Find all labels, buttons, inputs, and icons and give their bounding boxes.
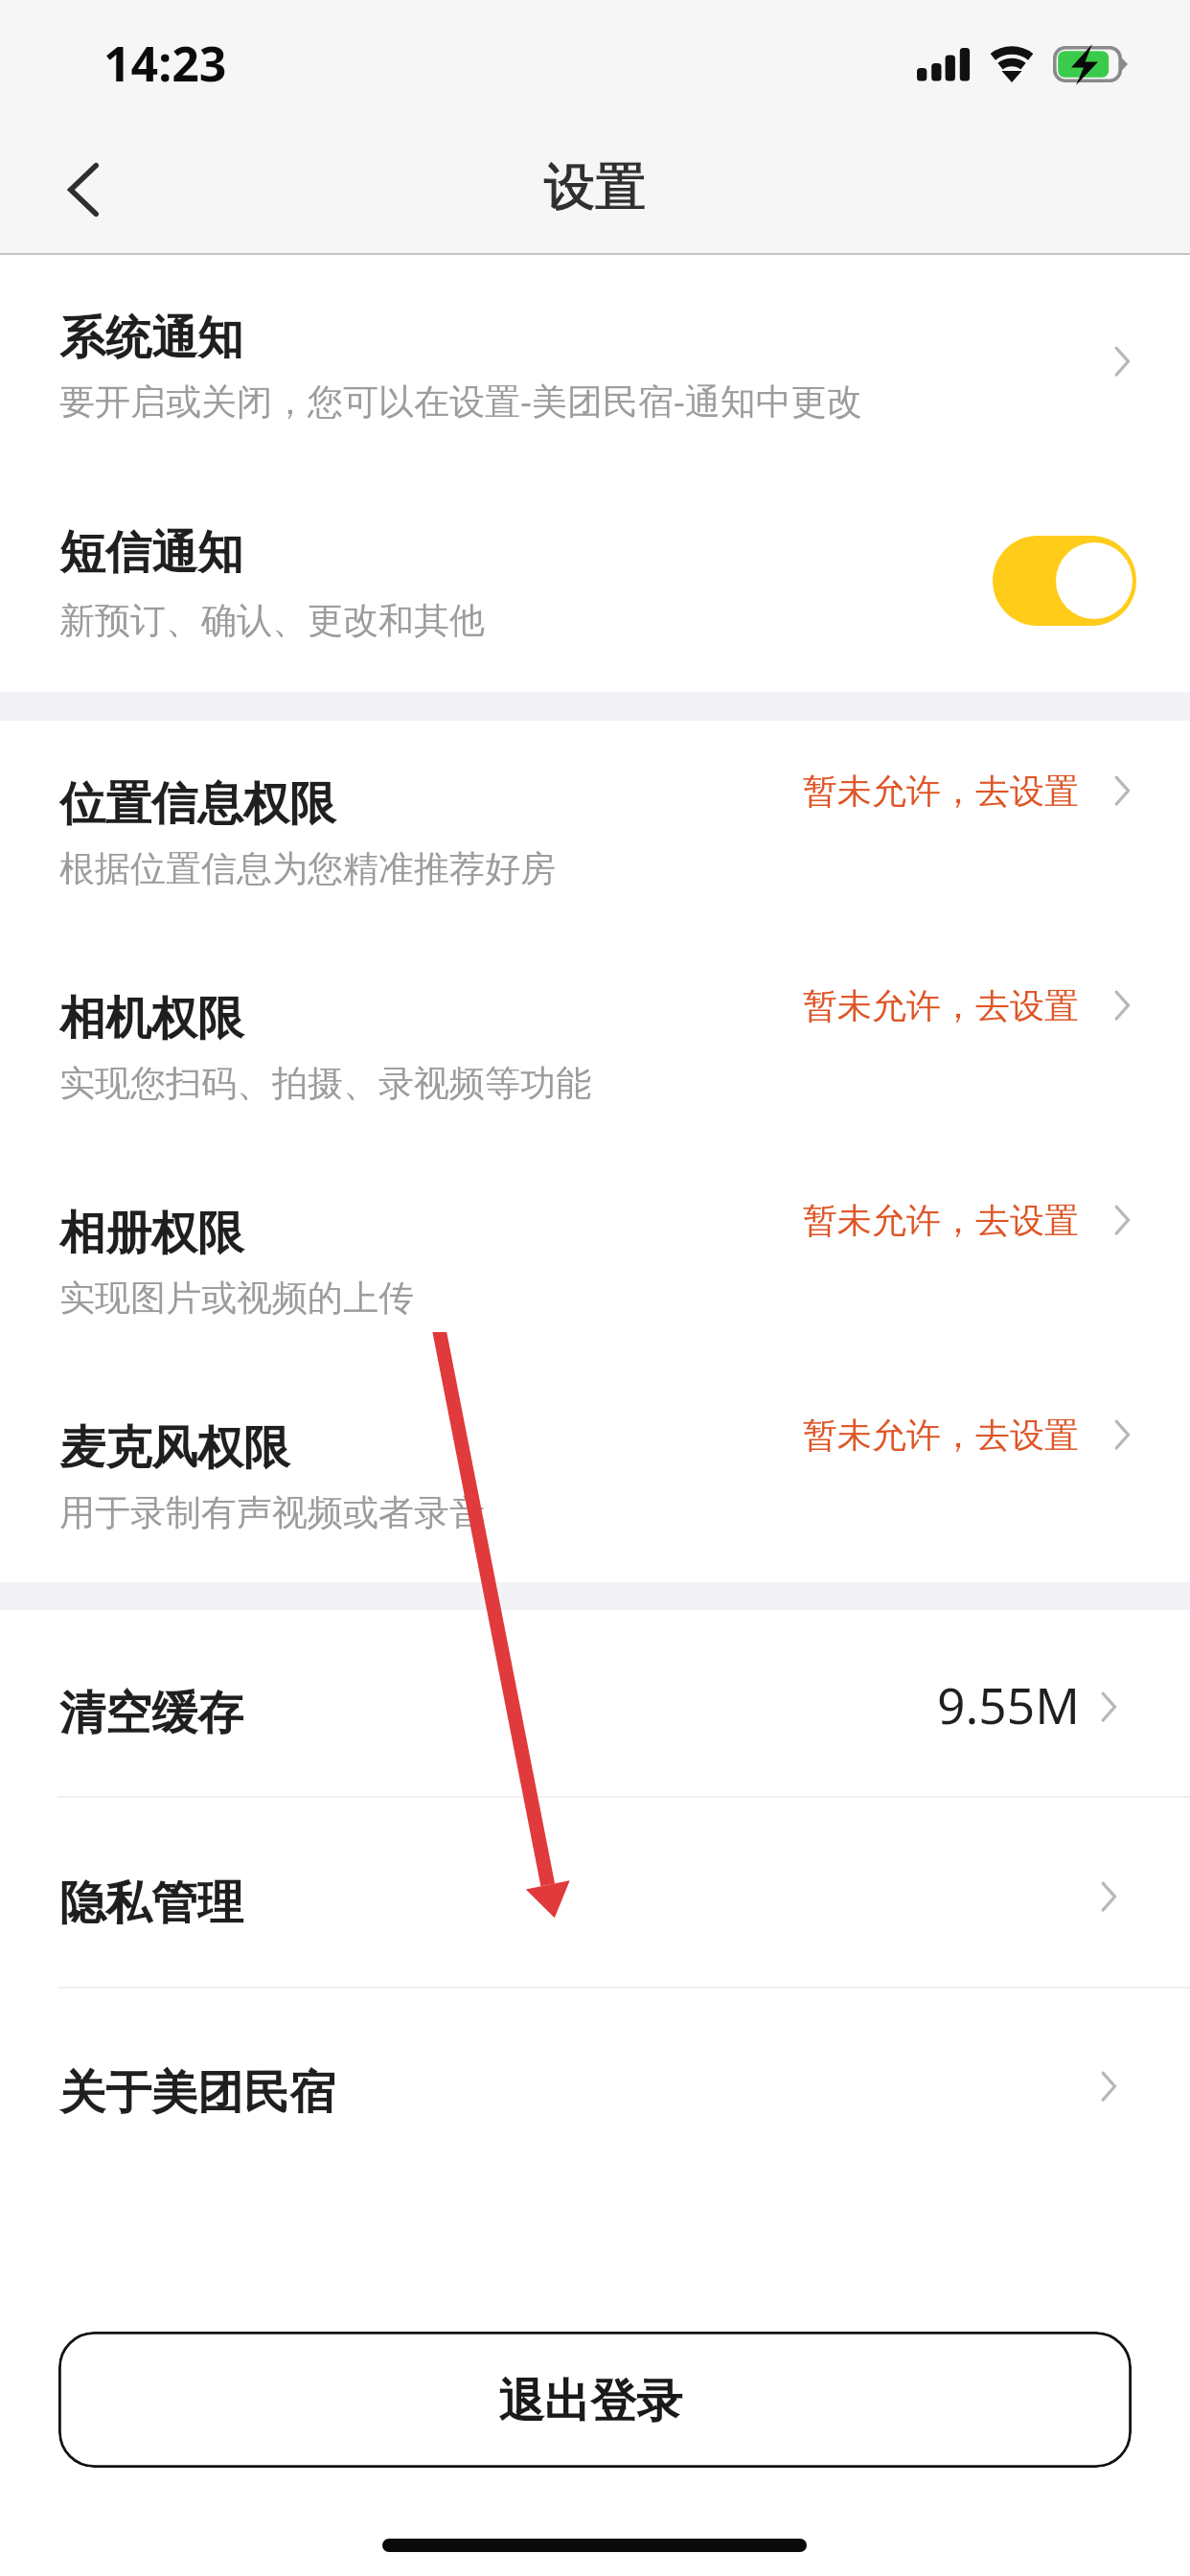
button[interactable]: [0, 1610, 1190, 1800]
staticText: 实现图片或视频的上传: [59, 1276, 414, 1321]
button[interactable]: 退出登录: [58, 2332, 1132, 2468]
staticText: 清空缓存: [59, 1685, 243, 1742]
staticText: 新预订、确认、更改和其他: [59, 598, 485, 643]
staticText: 要开启或关闭，您可以在设置-美团民宿-通知中更改: [59, 376, 862, 425]
staticText: 隐私管理: [59, 1874, 243, 1932]
button[interactable]: [0, 1989, 1190, 2179]
staticText: 实现您扫码、拍摄、录视频等功能: [59, 1061, 591, 1106]
staticText: 暂未允许，去设置: [803, 984, 1079, 1027]
staticText: 关于美团民宿: [59, 2064, 335, 2122]
button[interactable]: SMS notification switch: [993, 536, 1136, 626]
staticText: 暂未允许，去设置: [803, 1199, 1079, 1242]
button[interactable]: [0, 935, 1190, 1150]
button[interactable]: [0, 1150, 1190, 1365]
staticText: 9.55M: [937, 1671, 1080, 1738]
staticText: 相机权限: [59, 990, 243, 1047]
staticText: 退出登录: [498, 2373, 682, 2430]
staticText: 麦克风权限: [59, 1419, 289, 1477]
button[interactable]: [0, 721, 1190, 935]
staticText: 系统通知: [59, 310, 243, 367]
button[interactable]: [0, 1800, 1190, 1989]
staticText: 14:23: [103, 31, 227, 96]
staticText: 用于录制有声视频或者录音: [59, 1490, 485, 1535]
button[interactable]: Back: [30, 134, 140, 244]
button[interactable]: [0, 469, 1190, 692]
staticText: 设置: [544, 155, 646, 219]
staticText: 根据位置信息为您精准推荐好房: [59, 846, 556, 891]
staticText: 位置信息权限: [59, 775, 335, 833]
staticText: 相册权限: [59, 1205, 243, 1262]
staticText: 暂未允许，去设置: [803, 770, 1079, 813]
button[interactable]: [0, 1365, 1190, 1579]
button[interactable]: [0, 254, 1190, 469]
staticText: 短信通知: [59, 524, 243, 582]
staticText: 暂未允许，去设置: [803, 1414, 1079, 1457]
staticText: 设置: [544, 155, 646, 219]
